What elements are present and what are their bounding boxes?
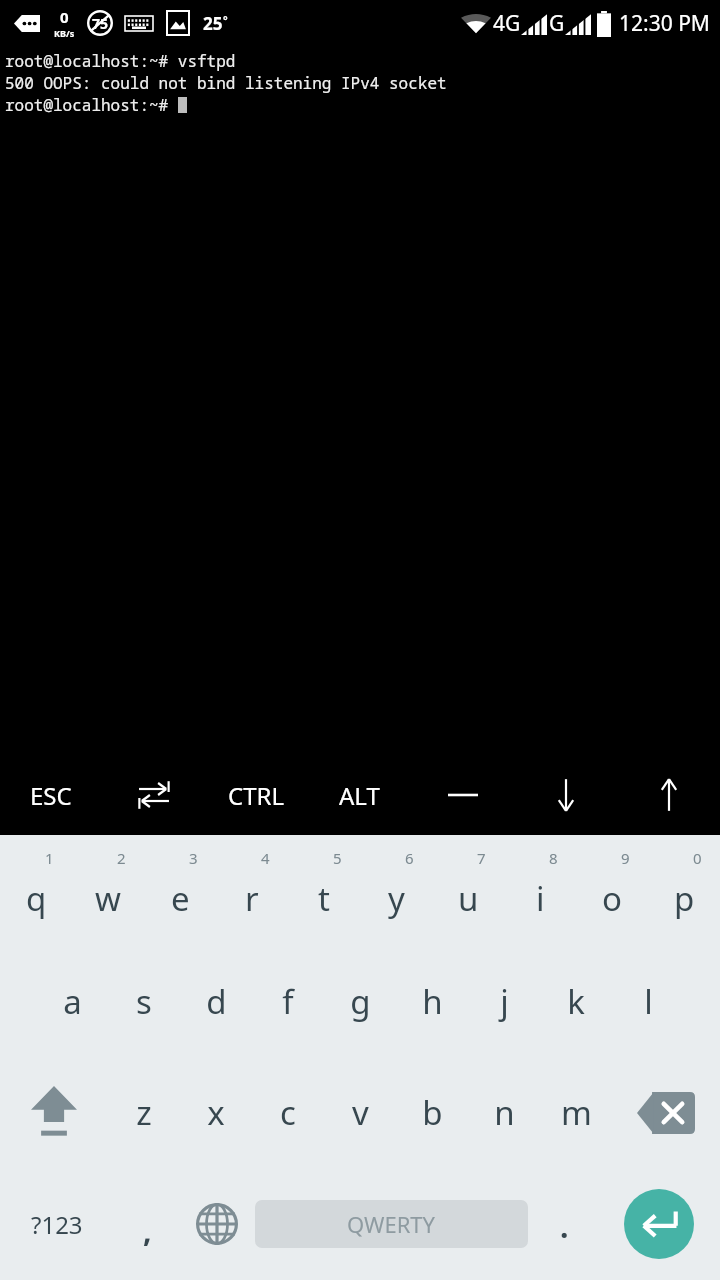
- staticText: 0: [60, 7, 69, 27]
- staticText: y: [388, 876, 405, 921]
- button[interactable]: h: [396, 946, 468, 1057]
- button[interactable]: k: [540, 946, 612, 1057]
- staticText: b: [422, 1090, 443, 1135]
- button[interactable]: 9: [576, 835, 648, 946]
- button[interactable]: Minus: [411, 755, 514, 835]
- staticText: 12:30 PM: [619, 9, 710, 38]
- staticText: KB/s: [54, 27, 75, 39]
- button[interactable]: CTRL: [205, 755, 308, 835]
- staticText: CTRL: [228, 779, 285, 812]
- staticText: 4G: [493, 9, 521, 38]
- staticText: g: [350, 979, 371, 1024]
- staticText: 75: [92, 14, 109, 33]
- staticText: i: [536, 876, 545, 921]
- staticText: ALT: [339, 779, 380, 812]
- button[interactable]: 5: [288, 835, 360, 946]
- staticText: w: [95, 876, 121, 921]
- staticText: v: [352, 1090, 369, 1135]
- button[interactable]: 2: [72, 835, 144, 946]
- staticText: ESC: [30, 779, 72, 812]
- button[interactable]: Backspace: [612, 1057, 720, 1168]
- staticText: 1: [45, 848, 54, 868]
- button[interactable]: ALT: [308, 755, 411, 835]
- button[interactable]: ESC: [0, 755, 102, 835]
- staticText: q: [26, 876, 47, 921]
- staticText: o: [602, 876, 622, 921]
- staticText: 25: [203, 12, 223, 35]
- button[interactable]: 3: [144, 835, 216, 946]
- staticText: QWERTY: [347, 1209, 436, 1239]
- staticText: 9: [621, 848, 630, 868]
- button[interactable]: 0: [648, 835, 720, 946]
- staticText: d: [206, 979, 227, 1024]
- staticText: 2: [117, 848, 126, 868]
- button[interactable]: ,: [113, 1168, 181, 1280]
- button[interactable]: 4: [216, 835, 288, 946]
- staticText: .: [560, 1206, 569, 1247]
- staticText: l: [644, 979, 653, 1024]
- staticText: x: [207, 1090, 225, 1135]
- button[interactable]: 8: [504, 835, 576, 946]
- button[interactable]: 7: [432, 835, 504, 946]
- button[interactable]: a: [36, 946, 108, 1057]
- staticText: e: [171, 876, 190, 921]
- button[interactable]: m: [540, 1057, 612, 1168]
- staticText: j: [500, 979, 509, 1024]
- staticText: r: [245, 876, 259, 921]
- staticText: m: [561, 1090, 592, 1135]
- staticText: °: [223, 12, 228, 27]
- button[interactable]: c: [252, 1057, 324, 1168]
- staticText: 7: [477, 848, 486, 868]
- staticText: ?123: [31, 1208, 83, 1241]
- staticText: root@localhost:~# vsftpd: [5, 50, 236, 72]
- button[interactable]: Tab: [102, 755, 205, 835]
- button[interactable]: s: [108, 946, 180, 1057]
- button[interactable]: Space: [253, 1168, 530, 1280]
- staticText: u: [458, 876, 479, 921]
- staticText: s: [136, 979, 152, 1024]
- button[interactable]: .: [530, 1168, 598, 1280]
- button[interactable]: g: [324, 946, 396, 1057]
- staticText: h: [422, 979, 443, 1024]
- staticText: f: [282, 979, 294, 1024]
- button[interactable]: 1: [0, 835, 72, 946]
- button[interactable]: b: [396, 1057, 468, 1168]
- button[interactable]: Shift: [0, 1057, 108, 1168]
- staticText: 500 OOPS: could not bind listening IPv4 …: [5, 72, 447, 94]
- button[interactable]: Enter: [598, 1168, 720, 1280]
- button[interactable]: Arrow up: [617, 755, 720, 835]
- button[interactable]: 6: [360, 835, 432, 946]
- button[interactable]: Arrow down: [514, 755, 617, 835]
- button[interactable]: j: [468, 946, 540, 1057]
- staticText: 8: [549, 848, 558, 868]
- button[interactable]: x: [180, 1057, 252, 1168]
- button[interactable]: v: [324, 1057, 396, 1168]
- staticText: 4: [261, 848, 270, 868]
- button[interactable]: ?123: [0, 1168, 113, 1280]
- staticText: G: [549, 9, 565, 38]
- staticText: a: [63, 979, 82, 1024]
- staticText: p: [674, 876, 695, 921]
- staticText: 3: [189, 848, 198, 868]
- staticText: 6: [405, 848, 414, 868]
- staticText: c: [280, 1090, 296, 1135]
- button[interactable]: d: [180, 946, 252, 1057]
- staticText: z: [136, 1090, 152, 1135]
- button[interactable]: Change input language: [181, 1168, 253, 1280]
- button[interactable]: n: [468, 1057, 540, 1168]
- staticText: root@localhost:~#: [5, 94, 178, 116]
- button[interactable]: f: [252, 946, 324, 1057]
- staticText: ,: [143, 1210, 152, 1251]
- staticText: 0: [693, 848, 702, 868]
- staticText: n: [494, 1090, 515, 1135]
- button[interactable]: z: [108, 1057, 180, 1168]
- staticText: 5: [333, 848, 342, 868]
- staticText: k: [567, 979, 585, 1024]
- button[interactable]: l: [612, 946, 684, 1057]
- staticText: t: [318, 876, 330, 921]
